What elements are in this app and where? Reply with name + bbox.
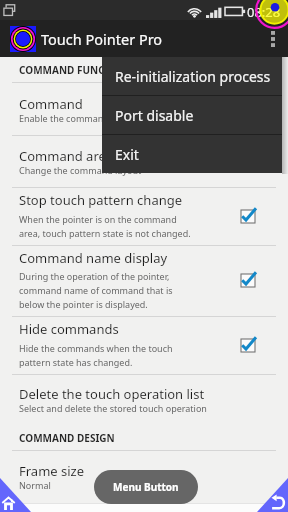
staticText: COMMAND FUNCTION [19,63,131,77]
staticText: During the operation of the pointer, com… [19,270,173,310]
staticText: Normal [19,479,51,491]
button[interactable]: Back [257,478,288,512]
staticText: Port disable [115,106,194,125]
staticText: Hide commands [19,320,119,338]
button[interactable]: Port disable [102,96,282,134]
button[interactable]: Command name display [0,249,288,313]
staticText: Select and delete the stored touch opera… [19,402,207,414]
staticText: Command [19,95,83,113]
button[interactable]: Re-initialization process [102,57,282,95]
staticText: Enable the command function [19,112,147,124]
button[interactable]: Delete the touch operation list [0,385,288,423]
staticText: Command name display [19,249,168,267]
staticText: Hide the commands when the touch pattern… [19,342,173,368]
button[interactable]: Exit [102,135,282,173]
staticText: COMMAND DESIGN [19,431,115,445]
button[interactable]: Menu Button [94,470,198,504]
staticText: 08:28 [247,3,281,21]
button[interactable]: Command area [0,147,288,185]
staticText: Change the command layout [19,164,142,176]
staticText: Frame size [19,462,85,480]
staticText: Exit [115,145,139,164]
staticText: Menu Button [113,480,179,494]
button[interactable]: Home [0,478,31,512]
button[interactable]: Command [0,95,288,133]
staticText: Re-initialization process [115,67,271,86]
button[interactable]: Frame size [0,462,288,500]
button[interactable]: Hide commands [0,320,288,372]
staticText: Command area [19,147,114,165]
staticText: When the pointer is on the command area,… [19,213,191,239]
staticText: Stop touch pattern change [19,191,183,209]
staticText: Touch Pointer Pro [41,29,163,49]
button[interactable]: More options [258,20,288,57]
button[interactable]: Stop touch pattern change [0,191,288,243]
staticText: Delete the touch operation list [19,385,205,403]
